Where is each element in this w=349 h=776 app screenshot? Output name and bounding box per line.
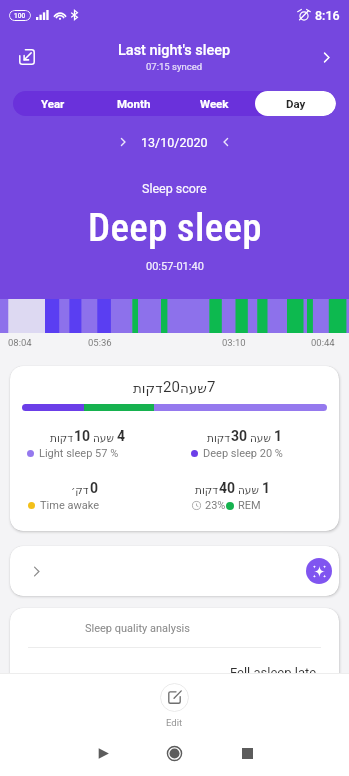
- staticText: שעה: [93, 432, 114, 444]
- button[interactable]: Sleep quality analysis: [10, 608, 339, 708]
- button[interactable]: Day: [255, 91, 336, 116]
- staticText: דקות: [133, 380, 163, 396]
- staticText: Deep sleep: [88, 205, 262, 251]
- staticText: 1: [274, 428, 283, 444]
- staticText: 00:44: [311, 337, 335, 348]
- staticText: 00:57-01:40: [146, 260, 204, 273]
- staticText: Edit: [166, 717, 183, 728]
- staticText: 20: [163, 378, 180, 396]
- staticText: 07:15 synced: [146, 61, 203, 72]
- staticText: שעה: [180, 380, 207, 396]
- staticText: דקות: [195, 484, 218, 496]
- button[interactable]: Collapse: [11, 41, 43, 73]
- button[interactable]: Week: [174, 91, 255, 116]
- staticText: Month: [117, 97, 151, 110]
- staticText: 1: [262, 480, 271, 496]
- staticText: דק׳: [71, 484, 89, 496]
- staticText: 100: [14, 12, 26, 20]
- button[interactable]: Next: [311, 42, 341, 72]
- button[interactable]: AI insight: [306, 558, 332, 584]
- staticText: 0: [90, 480, 99, 496]
- staticText: שעה: [250, 432, 271, 444]
- staticText: 8:16: [315, 8, 340, 23]
- staticText: Sleep score: [142, 181, 207, 196]
- staticText: Last night's sleep: [118, 42, 231, 59]
- staticText: Time awake: [40, 499, 99, 512]
- staticText: Light sleep 57 %: [39, 447, 119, 460]
- staticText: Day: [286, 97, 306, 110]
- staticText: Year: [41, 97, 65, 110]
- staticText: דקות: [50, 432, 73, 444]
- staticText: דקות: [207, 432, 230, 444]
- staticText: Fell asleep late: [230, 665, 317, 680]
- staticText: 10: [74, 428, 91, 444]
- staticText: 30: [231, 428, 248, 444]
- staticText: 4: [117, 428, 126, 444]
- staticText: 23%: [205, 499, 226, 512]
- button[interactable]: דקות: [10, 366, 339, 531]
- staticText: שעה: [238, 484, 259, 496]
- button[interactable]: Next day: [112, 131, 134, 153]
- button[interactable]: Previous day: [215, 131, 237, 153]
- button[interactable]: Edit: [160, 683, 189, 712]
- button[interactable]: Recents: [227, 733, 267, 773]
- staticText: REM: [238, 499, 261, 512]
- staticText: 08:04: [8, 337, 32, 348]
- staticText: 40: [219, 480, 236, 496]
- staticText: 13/10/2020: [141, 135, 208, 150]
- other: Expand: [28, 563, 44, 579]
- staticText: 7: [207, 378, 216, 396]
- button[interactable]: Year: [13, 91, 93, 116]
- staticText: Deep sleep 20 %: [203, 447, 283, 460]
- button[interactable]: Month: [93, 91, 174, 116]
- staticText: 03:10: [222, 337, 246, 348]
- staticText: Week: [200, 97, 229, 110]
- button[interactable]: Back: [83, 733, 123, 773]
- button[interactable]: Home: [154, 733, 194, 773]
- button[interactable]: Expand: [10, 546, 339, 596]
- staticText: 05:36: [88, 337, 112, 348]
- staticText: Sleep quality analysis: [85, 622, 190, 635]
